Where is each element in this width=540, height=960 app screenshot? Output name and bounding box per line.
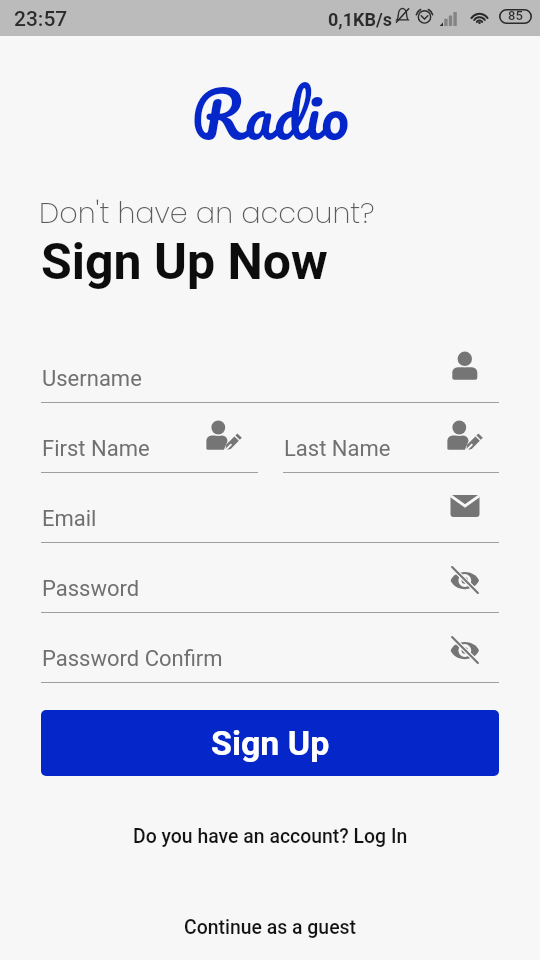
other: Edit name xyxy=(447,420,483,456)
staticText: Password xyxy=(42,576,140,602)
button[interactable]: Password Confirm xyxy=(41,631,499,683)
button[interactable]: First Name xyxy=(41,421,258,473)
staticText: Password Confirm xyxy=(42,646,223,672)
button[interactable]: Sign Up xyxy=(41,710,499,776)
button[interactable]: Last Name xyxy=(283,421,499,473)
button[interactable]: Email xyxy=(41,491,499,543)
other: Edit name xyxy=(206,420,242,456)
staticText: Sign Up Now xyxy=(41,233,328,292)
staticText: Radio xyxy=(191,59,349,168)
staticText: Last Name xyxy=(284,436,391,462)
other: Show password xyxy=(450,635,480,665)
staticText: Email xyxy=(42,506,97,532)
staticText: 85 xyxy=(508,8,523,23)
staticText: Sign Up xyxy=(211,723,330,763)
button[interactable]: Do you have an account? Log In xyxy=(0,820,540,852)
other: Email xyxy=(450,491,480,521)
button[interactable]: Password xyxy=(41,561,499,613)
staticText: 0,1KB/s xyxy=(328,9,392,30)
staticText: Don't have an account? xyxy=(39,193,375,233)
other: Username xyxy=(450,351,480,381)
other: Show password xyxy=(450,565,480,595)
staticText: Do you have an account? Log In xyxy=(133,825,408,848)
staticText: Continue as a guest xyxy=(184,916,357,939)
button[interactable]: Username xyxy=(41,351,499,403)
staticText: 23:57 xyxy=(14,7,68,32)
staticText: First Name xyxy=(42,436,150,462)
staticText: Username xyxy=(42,366,142,392)
button[interactable]: Continue as a guest xyxy=(0,911,540,943)
